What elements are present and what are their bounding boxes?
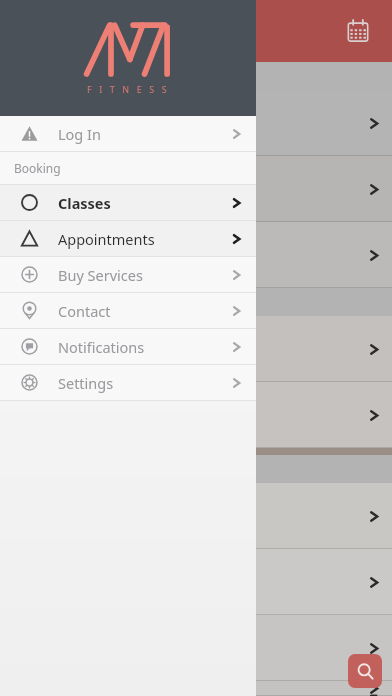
staticText: Classes	[58, 193, 111, 213]
button[interactable]	[0, 483, 392, 549]
button[interactable]	[0, 222, 392, 288]
button[interactable]: Log In	[0, 116, 256, 151]
staticText: Appointments	[58, 229, 155, 249]
staticText: Buy Services	[58, 265, 143, 285]
staticText: Wed 26	[14, 293, 60, 311]
button[interactable]: Buy Services	[0, 257, 256, 292]
button[interactable]: Classes	[0, 185, 256, 220]
button[interactable]	[0, 90, 392, 156]
button[interactable]	[0, 681, 392, 696]
button[interactable]	[0, 382, 392, 448]
button[interactable]: Settings	[0, 365, 256, 400]
button[interactable]: Search	[348, 654, 382, 688]
button[interactable]: Contact	[0, 293, 256, 328]
staticText: Contact	[58, 301, 111, 321]
button[interactable]	[0, 316, 392, 382]
staticText: Log In	[58, 124, 101, 144]
staticText: Settings	[58, 373, 114, 393]
staticText: Notifications	[58, 337, 145, 357]
button[interactable]: Calendar	[336, 9, 380, 53]
staticText: F I T N E S S	[87, 83, 170, 95]
button[interactable]	[0, 156, 392, 222]
button[interactable]	[0, 615, 392, 681]
button[interactable]: Appointments	[0, 221, 256, 256]
staticText: Booking	[14, 160, 61, 176]
button[interactable]	[0, 549, 392, 615]
button[interactable]: Notifications	[0, 329, 256, 364]
